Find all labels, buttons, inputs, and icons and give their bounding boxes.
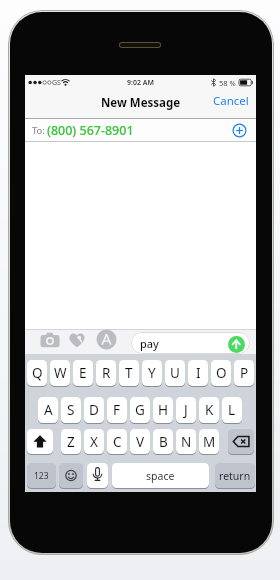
button[interactable]: return — [215, 463, 255, 488]
staticText: O — [216, 364, 227, 382]
button[interactable] — [87, 463, 108, 488]
button[interactable] — [96, 329, 117, 350]
staticText: B — [159, 433, 168, 451]
staticText: W — [54, 364, 67, 382]
staticText: J — [184, 401, 188, 419]
staticText: T — [125, 364, 133, 382]
staticText: Q — [32, 364, 43, 382]
button[interactable]: X — [84, 429, 104, 454]
staticText: E — [79, 364, 87, 382]
button[interactable]: R — [96, 360, 116, 386]
button[interactable]: D — [84, 397, 104, 423]
staticText: H — [158, 401, 169, 419]
staticText: 58 % — [219, 78, 236, 88]
staticText: Z — [67, 433, 75, 451]
staticText: (800) 567-8901 — [47, 122, 134, 139]
staticText: return — [219, 469, 251, 483]
staticText: U — [170, 364, 180, 382]
staticText: G — [135, 401, 145, 419]
staticText: S — [67, 401, 75, 419]
staticText: 123 — [34, 470, 49, 482]
staticText: V — [136, 433, 145, 451]
staticText: space — [146, 469, 175, 483]
button[interactable]: space — [112, 463, 209, 488]
staticText: C — [113, 433, 122, 451]
button[interactable]: L — [222, 397, 242, 423]
button[interactable]: P — [234, 360, 254, 386]
button[interactable]: pay — [131, 332, 250, 354]
button[interactable]: Y — [142, 360, 162, 386]
button[interactable]: B — [153, 429, 173, 454]
button[interactable] — [39, 330, 61, 350]
button[interactable]: S — [61, 397, 81, 423]
button[interactable]: C — [107, 429, 127, 454]
button[interactable]: Q — [27, 360, 47, 386]
button[interactable]: H — [153, 397, 173, 423]
button[interactable] — [228, 429, 254, 454]
staticText: A — [44, 401, 53, 419]
staticText: K — [205, 401, 214, 419]
staticText: L — [228, 401, 236, 419]
button[interactable]: 123 — [27, 463, 56, 488]
button[interactable] — [27, 429, 53, 454]
staticText: R — [102, 364, 111, 382]
staticText: GS — [52, 78, 61, 88]
button[interactable]: U — [165, 360, 185, 386]
button[interactable]: J — [176, 397, 196, 423]
staticText: 9:02 AM — [127, 78, 154, 88]
staticText: X — [90, 433, 98, 451]
button[interactable] — [228, 336, 245, 353]
button[interactable] — [232, 123, 247, 138]
staticText: M — [203, 433, 216, 451]
staticText: I — [196, 364, 201, 382]
button[interactable]: G — [130, 397, 150, 423]
button[interactable]: I — [188, 360, 208, 386]
staticText: P — [240, 364, 249, 382]
button[interactable]: M — [199, 429, 219, 454]
staticText: pay — [140, 336, 159, 351]
button[interactable]: Cancel — [211, 91, 251, 111]
button[interactable]: K — [199, 397, 219, 423]
staticText: N — [181, 433, 192, 451]
button[interactable]: W — [50, 360, 70, 386]
button[interactable]: N — [176, 429, 196, 454]
button[interactable] — [67, 330, 87, 350]
staticText: Cancel — [213, 93, 249, 109]
staticText: To: — [32, 124, 45, 137]
staticText: Y — [148, 364, 156, 382]
button[interactable]: V — [130, 429, 150, 454]
staticText: New Message — [101, 95, 181, 111]
button[interactable] — [59, 463, 83, 488]
button[interactable]: O — [211, 360, 231, 386]
button[interactable]: E — [73, 360, 93, 386]
button[interactable]: Z — [61, 429, 81, 454]
button[interactable]: T — [119, 360, 139, 386]
staticText: D — [89, 401, 99, 419]
button[interactable]: A — [38, 397, 58, 423]
staticText: F — [113, 401, 121, 419]
button[interactable]: F — [107, 397, 127, 423]
